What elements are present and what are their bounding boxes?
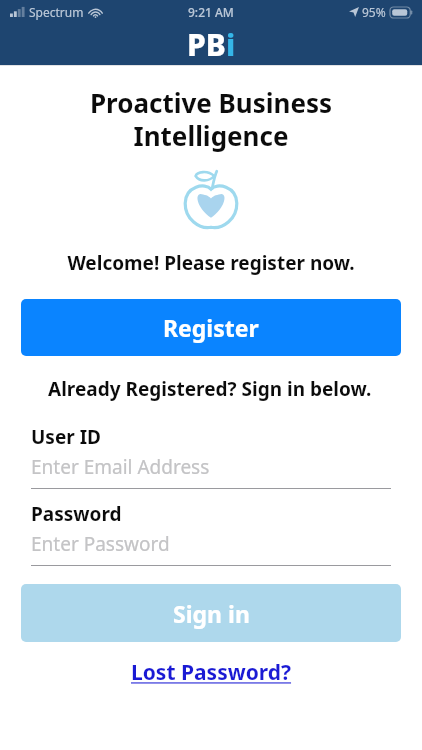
staticText: Lost Password? <box>131 658 292 687</box>
staticText: PB <box>187 24 226 65</box>
button[interactable]: Register <box>21 299 401 356</box>
staticText: Password <box>31 501 122 527</box>
staticText: 95% <box>362 4 386 20</box>
button[interactable]: Sign in <box>21 584 401 642</box>
staticText: 9:21 AM <box>188 4 234 20</box>
staticText: Welcome! Please register now. <box>12 250 410 276</box>
staticText: Proactive Business Intelligence <box>16 85 406 154</box>
staticText: i <box>226 24 236 65</box>
staticText: Sign in <box>173 598 250 629</box>
staticText: Enter Email Address <box>31 454 210 480</box>
staticText: User ID <box>31 424 101 450</box>
other: Health logo <box>182 169 240 230</box>
staticText: Spectrum <box>29 4 84 20</box>
button[interactable]: Enter Email Address <box>31 454 391 488</box>
staticText: Enter Password <box>31 531 170 557</box>
button[interactable]: Lost Password? <box>125 656 298 689</box>
staticText: Register <box>163 312 259 343</box>
button[interactable]: PB <box>183 24 240 65</box>
button[interactable]: Enter Password <box>31 531 391 565</box>
staticText: Already Registered? Sign in below. <box>48 376 374 402</box>
